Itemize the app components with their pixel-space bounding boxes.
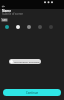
button[interactable]: Back [1,4,6,9]
staticText: Information message [14,60,40,63]
button[interactable]: Button [1,18,8,22]
staticText: Continue [26,91,39,95]
staticText: Subtitle of screen [2,12,24,16]
staticText: Name [2,9,11,13]
button[interactable]: Information message [9,59,41,64]
staticText: Button [1,18,8,22]
button[interactable]: Colour [15,24,20,29]
button[interactable]: Colour [4,24,9,29]
button[interactable]: Colour [37,24,42,29]
button[interactable]: Colour [26,24,31,29]
button[interactable]: Continue [3,89,61,96]
button[interactable]: Colour [48,24,53,29]
